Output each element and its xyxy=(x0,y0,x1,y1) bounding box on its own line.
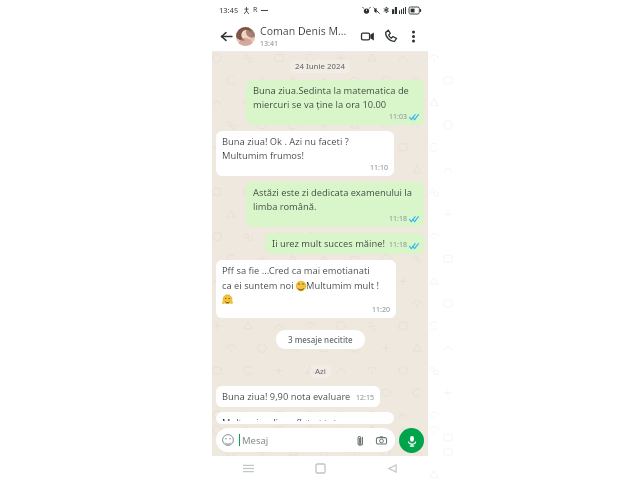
staticText: Buna ziua! Ok . Azi nu faceti ? xyxy=(222,135,349,148)
button[interactable]: Home xyxy=(284,456,356,480)
button[interactable]: Recent apps xyxy=(212,456,284,480)
staticText: 13:41 xyxy=(260,39,278,49)
button[interactable]: 3 mesaje necitite xyxy=(276,330,365,349)
button[interactable]: Emoji xyxy=(216,428,395,452)
button[interactable]: Buna ziua! 9,90 nota evaluare xyxy=(216,386,380,407)
staticText: 11:03 xyxy=(389,112,407,122)
staticText: 3 mesaje necitite xyxy=(288,334,353,345)
button[interactable]: Attach xyxy=(352,432,368,448)
button[interactable]: Record voice message xyxy=(399,428,424,453)
staticText: Multumim frumos! xyxy=(222,149,304,162)
other: Emoji xyxy=(222,434,234,446)
staticText: 11:18 xyxy=(389,214,407,224)
button[interactable]: Buna ziua.Sedinta la matematica de xyxy=(246,80,424,125)
staticText: 11:10 xyxy=(370,163,388,173)
staticText: Ii urez mult succes măine! xyxy=(272,237,385,250)
staticText: ca ei suntem noi xyxy=(222,279,296,292)
button[interactable]: Back xyxy=(216,26,236,46)
staticText: Multumim mult ! xyxy=(306,279,379,292)
staticText: Astăzi este zi dedicata examenului la xyxy=(253,186,412,199)
staticText: 13:45 xyxy=(219,5,239,15)
button[interactable]: Ii urez mult succes măine! xyxy=(265,233,424,254)
button[interactable]: Camera xyxy=(373,432,389,448)
button[interactable]: Voice call xyxy=(380,25,402,47)
button[interactable]: Multumim din suflet pt tot ceea ce a xyxy=(216,412,394,424)
button[interactable]: More options xyxy=(403,26,423,46)
button[interactable]: Video call xyxy=(356,25,378,47)
staticText: Pff sa fie ...Cred ca mai emotianati xyxy=(222,264,370,277)
staticText: 24 Iunie 2024 xyxy=(295,61,345,72)
staticText: Buna ziua.Sedinta la matematica de xyxy=(253,84,409,97)
staticText: 11:18 xyxy=(389,240,407,250)
staticText: miercuri se va ține la ora 10.00 xyxy=(253,98,387,111)
button[interactable]: Astăzi este zi dedicata examenului la xyxy=(246,182,424,227)
staticText: Coman Denis M… xyxy=(260,24,347,38)
staticText: limba română. xyxy=(253,200,317,213)
staticText: Azi xyxy=(315,366,326,377)
button[interactable]: Back xyxy=(356,456,428,480)
staticText: Multumim din suflet pt tot ceea ce a xyxy=(222,416,380,421)
staticText: Mesaj xyxy=(242,434,269,447)
staticText: Buna ziua! 9,90 nota evaluare xyxy=(222,390,351,403)
staticText: 12:15 xyxy=(356,393,374,403)
staticText: 11:20 xyxy=(372,305,390,315)
button[interactable]: Pff sa fie ...Cred ca mai emotianati xyxy=(216,260,396,318)
button[interactable]: Coman Denis M… xyxy=(236,20,356,52)
staticText: R xyxy=(253,5,258,15)
button[interactable]: Buna ziua! Ok . Azi nu faceti ? xyxy=(216,131,394,176)
